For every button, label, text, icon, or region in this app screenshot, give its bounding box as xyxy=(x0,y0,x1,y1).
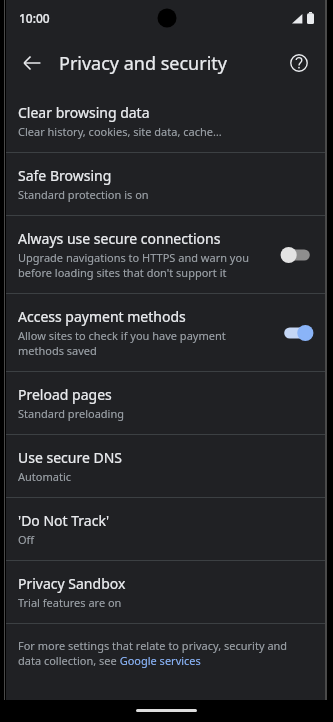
staticText: Privacy and security xyxy=(59,51,227,76)
staticText: Upgrade navigations to HTTPS and warn yo… xyxy=(18,250,271,280)
staticText: Standard preloading xyxy=(18,406,124,421)
button[interactable]: Toggle on xyxy=(281,324,313,342)
staticText: Always use secure connections xyxy=(18,229,221,248)
staticText: Access payment methods xyxy=(18,307,186,326)
staticText: 'Do Not Track' xyxy=(18,511,110,530)
button[interactable]: Privacy Sandbox xyxy=(6,561,325,623)
button[interactable]: Clear browsing data xyxy=(6,90,325,152)
staticText: Clear history, cookies, site data, cache… xyxy=(18,124,222,139)
staticText: Clear browsing data xyxy=(18,103,150,122)
button[interactable]: Always use secure connections xyxy=(6,216,325,293)
staticText: 10:00 xyxy=(19,10,50,26)
button[interactable]: Help xyxy=(279,43,319,83)
staticText: Automatic xyxy=(18,469,71,484)
button[interactable]: Use secure DNS xyxy=(6,435,325,497)
button[interactable]: Back xyxy=(12,43,52,83)
staticText: Allow sites to check if you have payment… xyxy=(18,328,271,358)
button[interactable]: Preload pages xyxy=(6,372,325,434)
button[interactable]: Toggle off xyxy=(281,246,313,264)
staticText: Standard protection is on xyxy=(18,187,149,202)
staticText: Use secure DNS xyxy=(18,448,123,467)
staticText: For more settings that relate to privacy… xyxy=(18,638,313,668)
staticText: Off xyxy=(18,532,35,547)
staticText: Safe Browsing xyxy=(18,166,112,185)
staticText: Trial features are on xyxy=(18,595,122,610)
staticText: Preload pages xyxy=(18,385,112,404)
button[interactable]: Safe Browsing xyxy=(6,153,325,215)
button[interactable]: 'Do Not Track' xyxy=(6,498,325,560)
button[interactable]: For more settings that relate to privacy… xyxy=(6,624,325,682)
button[interactable]: Access payment methods xyxy=(6,294,325,371)
staticText: Privacy Sandbox xyxy=(18,574,126,593)
